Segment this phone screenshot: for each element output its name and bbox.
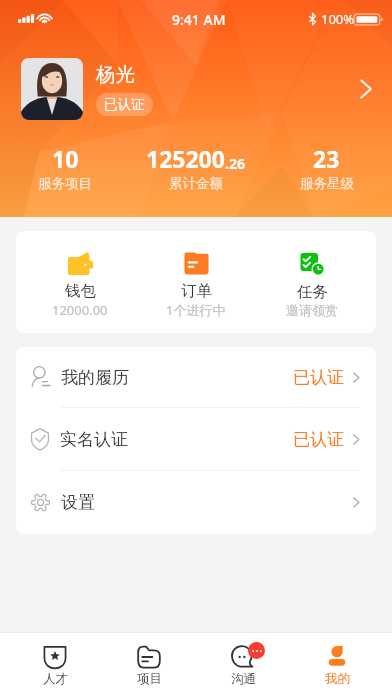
staticText: 服务星级 (300, 175, 354, 192)
staticText: 沟通 (231, 671, 256, 687)
button[interactable]: 沟通 (196, 633, 290, 696)
staticText: 订单 (181, 281, 212, 301)
button[interactable]: 头像 (21, 58, 83, 120)
staticText: 23 (313, 143, 340, 174)
staticText: .26 (225, 154, 245, 173)
staticText: 10 (52, 143, 79, 174)
staticText: 邀请领赏 (286, 302, 338, 318)
staticText: 人才 (43, 671, 68, 687)
staticText: 我的履历 (61, 367, 129, 388)
button[interactable]: 我的履历 (16, 347, 376, 407)
button[interactable]: 人才 (8, 633, 102, 696)
button[interactable]: 钱包 (22, 231, 138, 333)
staticText: 设置 (61, 492, 95, 513)
button[interactable]: 我的 (290, 633, 384, 696)
staticText: 已认证 (104, 96, 145, 113)
staticText: 累计金额 (169, 175, 223, 192)
staticText: 1个进行中 (166, 301, 226, 319)
button[interactable]: 实名认证 (16, 408, 376, 470)
staticText: 服务项目 (38, 175, 92, 192)
button[interactable]: 任务 (254, 231, 370, 333)
staticText: 钱包 (65, 281, 96, 301)
staticText: 实名认证 (60, 429, 128, 450)
button[interactable]: 查看个人主页 (351, 74, 381, 104)
button[interactable]: 已认证 (96, 93, 153, 116)
button[interactable]: 设置 (16, 471, 376, 534)
staticText: 已认证 (293, 367, 344, 388)
staticText: 100% (321, 10, 355, 28)
staticText: 12000.00 (52, 301, 108, 319)
button[interactable]: 项目 (102, 633, 196, 696)
staticText: 125200 (146, 143, 225, 174)
staticText: 9:41 AM (172, 10, 226, 29)
staticText: 项目 (137, 671, 162, 687)
staticText: 已认证 (293, 429, 344, 450)
staticText: 杨光 (96, 62, 135, 87)
staticText: 任务 (297, 282, 328, 302)
button[interactable]: 订单 (138, 231, 254, 333)
staticText: 我的 (325, 671, 350, 687)
